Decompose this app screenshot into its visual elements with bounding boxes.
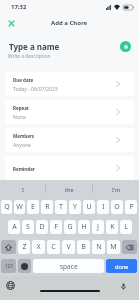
- button[interactable]: M: [107, 240, 120, 254]
- button[interactable]: Reminder: [5, 156, 134, 180]
- staticText: B: [81, 242, 86, 252]
- staticText: Due date: [13, 77, 34, 83]
- staticText: O: [114, 202, 120, 212]
- staticText: G: [67, 222, 73, 232]
- staticText: Add a Chore: [51, 19, 88, 27]
- button[interactable]: Backspace: [122, 240, 137, 254]
- button[interactable]: R: [41, 200, 53, 214]
- staticText: 123: [5, 263, 13, 269]
- staticText: the: [65, 186, 74, 193]
- button[interactable]: H: [78, 220, 90, 234]
- staticText: Q: [4, 202, 10, 212]
- staticText: done: [115, 263, 129, 270]
- button[interactable]: K: [106, 220, 118, 234]
- staticText: Anyone: [13, 142, 31, 149]
- staticText: L: [124, 222, 128, 232]
- staticText: S: [26, 222, 30, 232]
- staticText: H: [81, 222, 87, 232]
- button[interactable]: I'm: [93, 181, 139, 197]
- button[interactable]: Pick icon: [120, 41, 131, 52]
- button[interactable]: I: [97, 200, 109, 214]
- staticText: X: [36, 242, 41, 252]
- button[interactable]: space: [33, 259, 104, 273]
- button[interactable]: E: [27, 200, 39, 214]
- button[interactable]: D: [36, 220, 48, 234]
- staticText: I: [102, 202, 105, 212]
- staticText: 17:32: [11, 3, 27, 11]
- staticText: Repeat: [13, 105, 29, 111]
- button[interactable]: N: [92, 240, 105, 254]
- button[interactable]: Emoji: [18, 259, 31, 273]
- staticText: T: [59, 202, 63, 212]
- staticText: None: [13, 114, 26, 121]
- staticText: V: [66, 242, 71, 252]
- staticText: Today - 06/07/2023: [13, 86, 58, 93]
- button[interactable]: X: [32, 240, 45, 254]
- button[interactable]: P: [125, 200, 137, 214]
- button[interactable]: J: [92, 220, 104, 234]
- staticText: M: [110, 242, 117, 252]
- staticText: Z: [22, 242, 27, 252]
- staticText: J: [97, 222, 99, 232]
- button[interactable]: the: [46, 181, 92, 197]
- button[interactable]: Due date: [5, 72, 134, 96]
- button[interactable]: S: [22, 220, 34, 234]
- button[interactable]: Repeat: [5, 100, 134, 124]
- staticText: D: [39, 222, 45, 232]
- staticText: Reminder: [13, 166, 35, 172]
- button[interactable]: done: [106, 259, 137, 273]
- staticText: Type a name: [9, 41, 60, 52]
- button[interactable]: G: [64, 220, 76, 234]
- button[interactable]: F: [50, 220, 62, 234]
- button[interactable]: Members: [5, 128, 134, 152]
- button[interactable]: Change keyboard language: [4, 279, 16, 291]
- staticText: K: [110, 222, 115, 232]
- button[interactable]: Close: [4, 16, 19, 31]
- button[interactable]: Q: [1, 200, 12, 214]
- button[interactable]: Z: [18, 240, 30, 254]
- staticText: I: [22, 186, 24, 193]
- button[interactable]: 123: [1, 259, 16, 273]
- button[interactable]: V: [62, 240, 75, 254]
- button[interactable]: B: [77, 240, 90, 254]
- staticText: Write a description: [8, 53, 51, 60]
- button[interactable]: Y: [69, 200, 81, 214]
- staticText: R: [45, 202, 50, 212]
- staticText: Members: [13, 133, 35, 139]
- button[interactable]: A: [8, 220, 20, 234]
- button[interactable]: W: [14, 200, 25, 214]
- staticText: space: [60, 262, 78, 271]
- button[interactable]: Shift: [1, 240, 16, 254]
- staticText: E: [31, 202, 35, 212]
- button[interactable]: T: [55, 200, 67, 214]
- button[interactable]: Voice input: [117, 280, 129, 292]
- staticText: U: [86, 202, 92, 212]
- button[interactable]: C: [47, 240, 60, 254]
- staticText: Y: [73, 202, 77, 212]
- button[interactable]: O: [111, 200, 123, 214]
- button[interactable]: L: [120, 220, 132, 234]
- staticText: P: [129, 202, 134, 212]
- staticText: I'm: [112, 186, 121, 193]
- staticText: W: [16, 202, 23, 212]
- button[interactable]: I: [0, 181, 45, 197]
- staticText: C: [51, 242, 56, 252]
- button[interactable]: U: [83, 200, 95, 214]
- staticText: N: [96, 242, 102, 252]
- staticText: A: [12, 222, 17, 232]
- staticText: F: [54, 222, 58, 232]
